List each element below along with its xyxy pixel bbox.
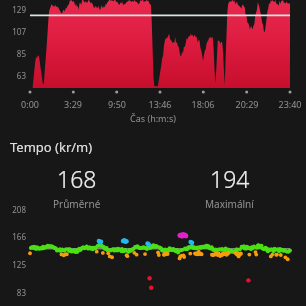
button[interactable]: 194: [153, 163, 306, 211]
staticText: 0:00: [14, 98, 46, 110]
staticText: Průměrné: [53, 197, 101, 211]
staticText: 166: [0, 231, 26, 242]
staticText: 168: [57, 163, 97, 194]
staticText: 129: [0, 4, 26, 15]
staticText: 3:29: [57, 98, 89, 110]
staticText: 23:40: [274, 98, 306, 110]
staticText: 20:29: [231, 98, 263, 110]
staticText: 208: [0, 204, 26, 215]
staticText: Čas (h:m:s): [0, 112, 306, 124]
staticText: 194: [210, 163, 250, 194]
button[interactable]: 168: [0, 163, 153, 211]
staticText: 85: [0, 48, 26, 59]
staticText: 9:50: [101, 98, 133, 110]
staticText: 13:46: [144, 98, 176, 110]
staticText: Tempo (kr/m): [10, 138, 93, 156]
staticText: 125: [0, 259, 26, 270]
staticText: 63: [0, 70, 26, 81]
staticText: 83: [0, 287, 26, 298]
staticText: 18:06: [187, 98, 219, 110]
staticText: Maximální: [205, 197, 254, 211]
staticText: 107: [0, 26, 26, 37]
